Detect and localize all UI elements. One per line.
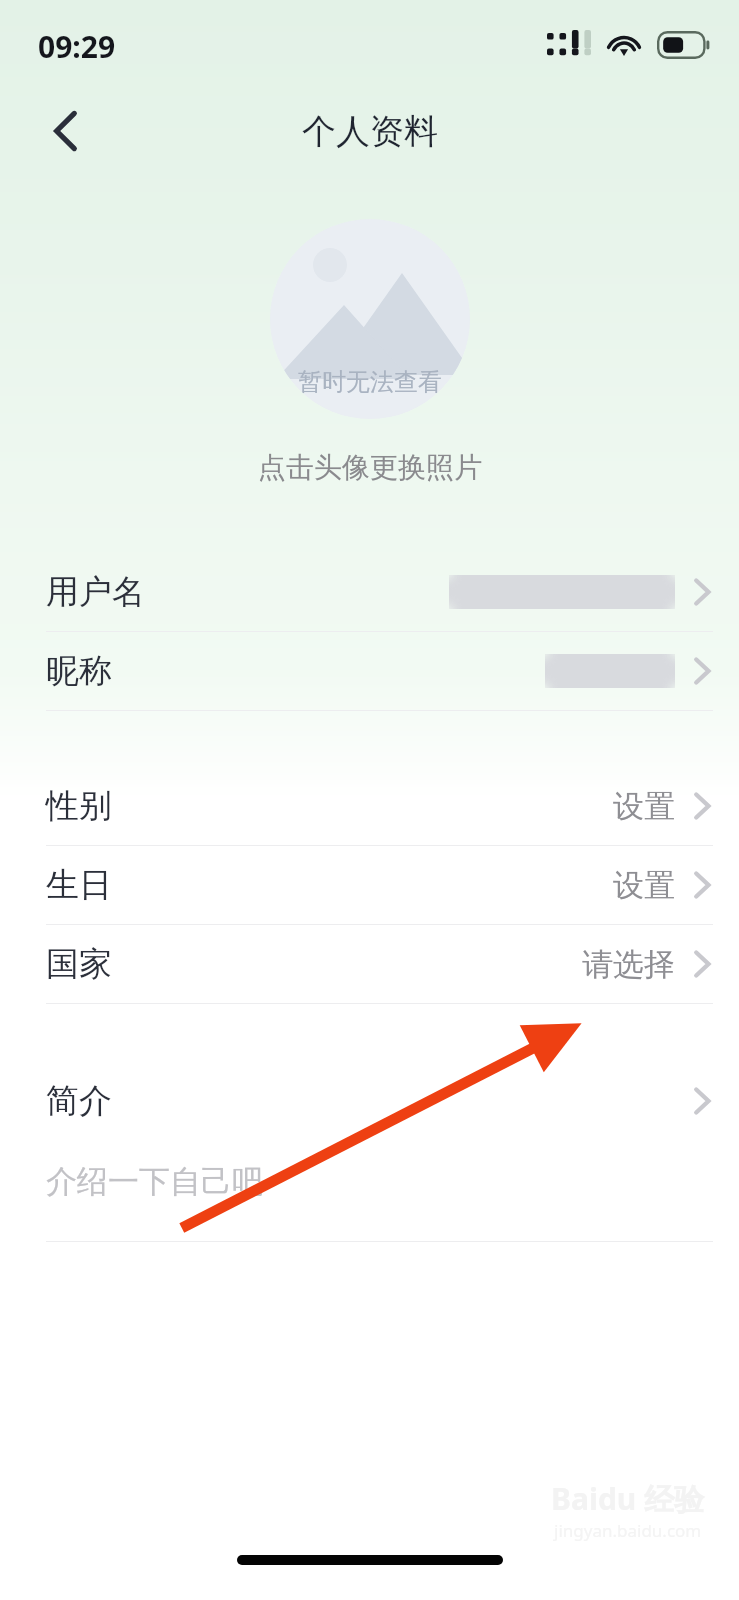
staticText: 09:29 xyxy=(38,26,116,67)
staticText: 性别 xyxy=(46,785,112,827)
button[interactable]: 点击头像更换照片 xyxy=(248,444,492,491)
button[interactable]: 简介 xyxy=(0,1066,739,1241)
staticText: jingyan.baidu.com xyxy=(554,1519,702,1542)
staticText: 昵称 xyxy=(46,650,112,692)
staticText: 介绍一下自己吧 xyxy=(46,1162,263,1201)
staticText: 生日 xyxy=(46,864,112,906)
button[interactable]: 国家 xyxy=(0,925,739,1003)
staticText: 个人资料 xyxy=(302,110,438,153)
staticText: Baidu 经验 xyxy=(551,1478,705,1519)
button[interactable]: 用户名 xyxy=(0,553,739,631)
staticText: 暂时无法查看 xyxy=(298,367,442,397)
button[interactable]: 昵称 xyxy=(0,632,739,710)
staticText: 设置 xyxy=(613,866,675,905)
button[interactable]: 返回 xyxy=(31,96,101,166)
staticText: 国家 xyxy=(46,943,112,985)
staticText: 用户名 xyxy=(46,571,145,613)
staticText: 简介 xyxy=(46,1080,112,1122)
button[interactable]: 生日 xyxy=(0,846,739,924)
staticText: 点击头像更换照片 xyxy=(258,450,482,485)
button[interactable]: 更换头像 xyxy=(270,219,470,419)
staticText: 设置 xyxy=(613,787,675,826)
staticText: 请选择 xyxy=(582,945,675,984)
button[interactable]: 性别 xyxy=(0,767,739,845)
